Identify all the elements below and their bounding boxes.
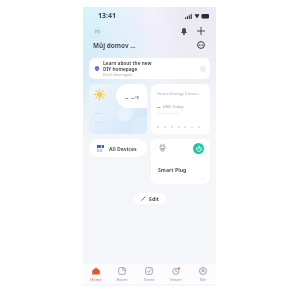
staticText: Learn about the new	[103, 60, 152, 66]
staticText: DIY homepage	[103, 66, 138, 72]
button[interactable]: Account	[195, 39, 207, 51]
button[interactable]: Add	[195, 25, 207, 37]
staticText: Don't show again	[103, 72, 133, 77]
staticText: Home	[90, 277, 102, 282]
staticText: -- --	[95, 110, 102, 116]
button[interactable]: Me	[189, 264, 216, 284]
staticText: Smart	[170, 277, 182, 282]
staticText: -- --	[95, 119, 102, 125]
staticText: Edit	[149, 195, 159, 202]
button[interactable]: Notifications	[178, 25, 190, 37]
button[interactable]: Dismiss	[200, 66, 206, 72]
button[interactable]: Scene	[135, 264, 162, 284]
button[interactable]: --	[89, 84, 147, 134]
button[interactable]: Power toggle	[151, 139, 210, 184]
button[interactable]: Edit	[134, 193, 166, 204]
button[interactable]: Můj domov ...	[93, 41, 136, 50]
staticText: Smart Plug	[158, 166, 187, 173]
staticText: --	[131, 94, 135, 101]
staticText: Můj domov ...	[93, 41, 136, 50]
staticText: All Devices	[109, 145, 137, 152]
staticText: kWh Today	[163, 104, 184, 109]
staticText: 13:41	[98, 11, 116, 21]
staticText: °C	[135, 95, 140, 100]
button[interactable]: Smart	[162, 264, 189, 284]
staticText: Room	[116, 277, 128, 282]
button[interactable]: Learn about the new	[89, 58, 210, 79]
staticText: --	[125, 94, 129, 101]
staticText: m	[95, 28, 100, 35]
staticText: --	[202, 175, 205, 180]
button[interactable]: All Devices	[89, 139, 147, 157]
button[interactable]: Home Energy Consu...	[151, 84, 210, 134]
staticText: --	[157, 103, 161, 110]
button[interactable]: Power toggle	[193, 143, 204, 154]
button[interactable]: Home	[83, 264, 109, 284]
staticText: Scene	[143, 277, 155, 282]
staticText: Me	[200, 277, 206, 282]
staticText: Home Energy Consu...	[157, 91, 201, 97]
button[interactable]: Profile	[93, 27, 102, 36]
button[interactable]: Room	[109, 264, 135, 284]
